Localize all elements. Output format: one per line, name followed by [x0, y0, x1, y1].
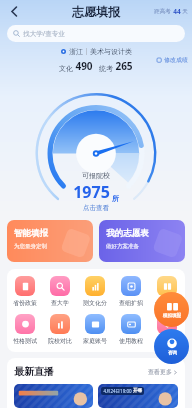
staticText: 模拟填报 [163, 313, 181, 319]
staticText: 家庭账号 [83, 337, 107, 345]
button[interactable]: 查看更多 [148, 368, 178, 376]
staticText: 智能填报 [14, 228, 48, 239]
staticText: 我的志愿表 [106, 228, 149, 239]
button[interactable]: 智能填报 [7, 220, 93, 262]
button[interactable]: 距高考 [154, 7, 188, 16]
button[interactable]: 可报院校 1975 所 点击查看 [30, 88, 162, 214]
staticText: 查看更多 [148, 368, 172, 376]
staticText: 所 [112, 194, 119, 203]
staticText: 省份政策 [13, 299, 37, 307]
staticText: 可报院校 [82, 171, 110, 180]
button[interactable]: 省份政策 [7, 276, 42, 307]
staticText: 修改成绩 [164, 56, 188, 64]
staticText: 44 [173, 7, 181, 16]
button[interactable]: 教程 [149, 314, 185, 345]
staticText: 志愿填报 [72, 4, 120, 19]
staticText: 教程 [161, 337, 173, 345]
button[interactable]: 家庭账号 [77, 314, 113, 345]
staticText: 最新直播 [14, 365, 54, 378]
staticText: 测文化分 [83, 299, 107, 307]
button[interactable]: 测文化分 [77, 276, 113, 307]
staticText: 美术与设计类 [90, 47, 132, 56]
staticText: 天 [182, 8, 188, 15]
staticText: 为您量身定制 [14, 243, 47, 250]
button[interactable] [14, 384, 93, 408]
staticText: 找大学/查专业 [23, 29, 65, 38]
staticText: 性格测试 [13, 337, 37, 345]
staticText: 265 [115, 59, 133, 73]
staticText: 咨询 [168, 350, 177, 356]
staticText: 490 [75, 59, 93, 73]
staticText: 查大学 [51, 299, 69, 307]
button[interactable]: 找大学/查专业 [7, 25, 185, 42]
button[interactable]: 4月24日19:00 [98, 384, 178, 408]
staticText: 浙江 [69, 47, 83, 56]
button[interactable]: 使用教程 [113, 314, 149, 345]
staticText: 统考 [99, 64, 113, 73]
staticText: 开播 [133, 388, 142, 394]
staticText: 院校对比 [48, 337, 72, 345]
button[interactable]: 一分一段 [149, 276, 185, 307]
button[interactable]: 模拟填报 [154, 292, 189, 327]
button[interactable]: 返回 [4, 1, 24, 21]
staticText: 距高考 [154, 8, 171, 15]
staticText: 1975 [73, 181, 110, 203]
staticText: 4月24日19:00 [103, 388, 132, 394]
staticText: 做好方案准备 [106, 243, 139, 250]
staticText: 使用教程 [119, 337, 143, 345]
staticText: 文化 [59, 64, 73, 73]
button[interactable]: 查大学 [42, 276, 77, 307]
button[interactable]: 咨询 [154, 329, 189, 364]
button[interactable]: 院校对比 [42, 314, 77, 345]
staticText: 点击查看 [83, 204, 109, 212]
staticText: 一分一段 [155, 299, 179, 307]
button[interactable]: 性格测试 [7, 314, 42, 345]
button[interactable]: 查细扩招 [113, 276, 149, 307]
staticText: 查细扩招 [119, 299, 143, 307]
button[interactable]: 我的志愿表 [99, 220, 185, 262]
button[interactable]: 修改成绩 [157, 56, 188, 64]
